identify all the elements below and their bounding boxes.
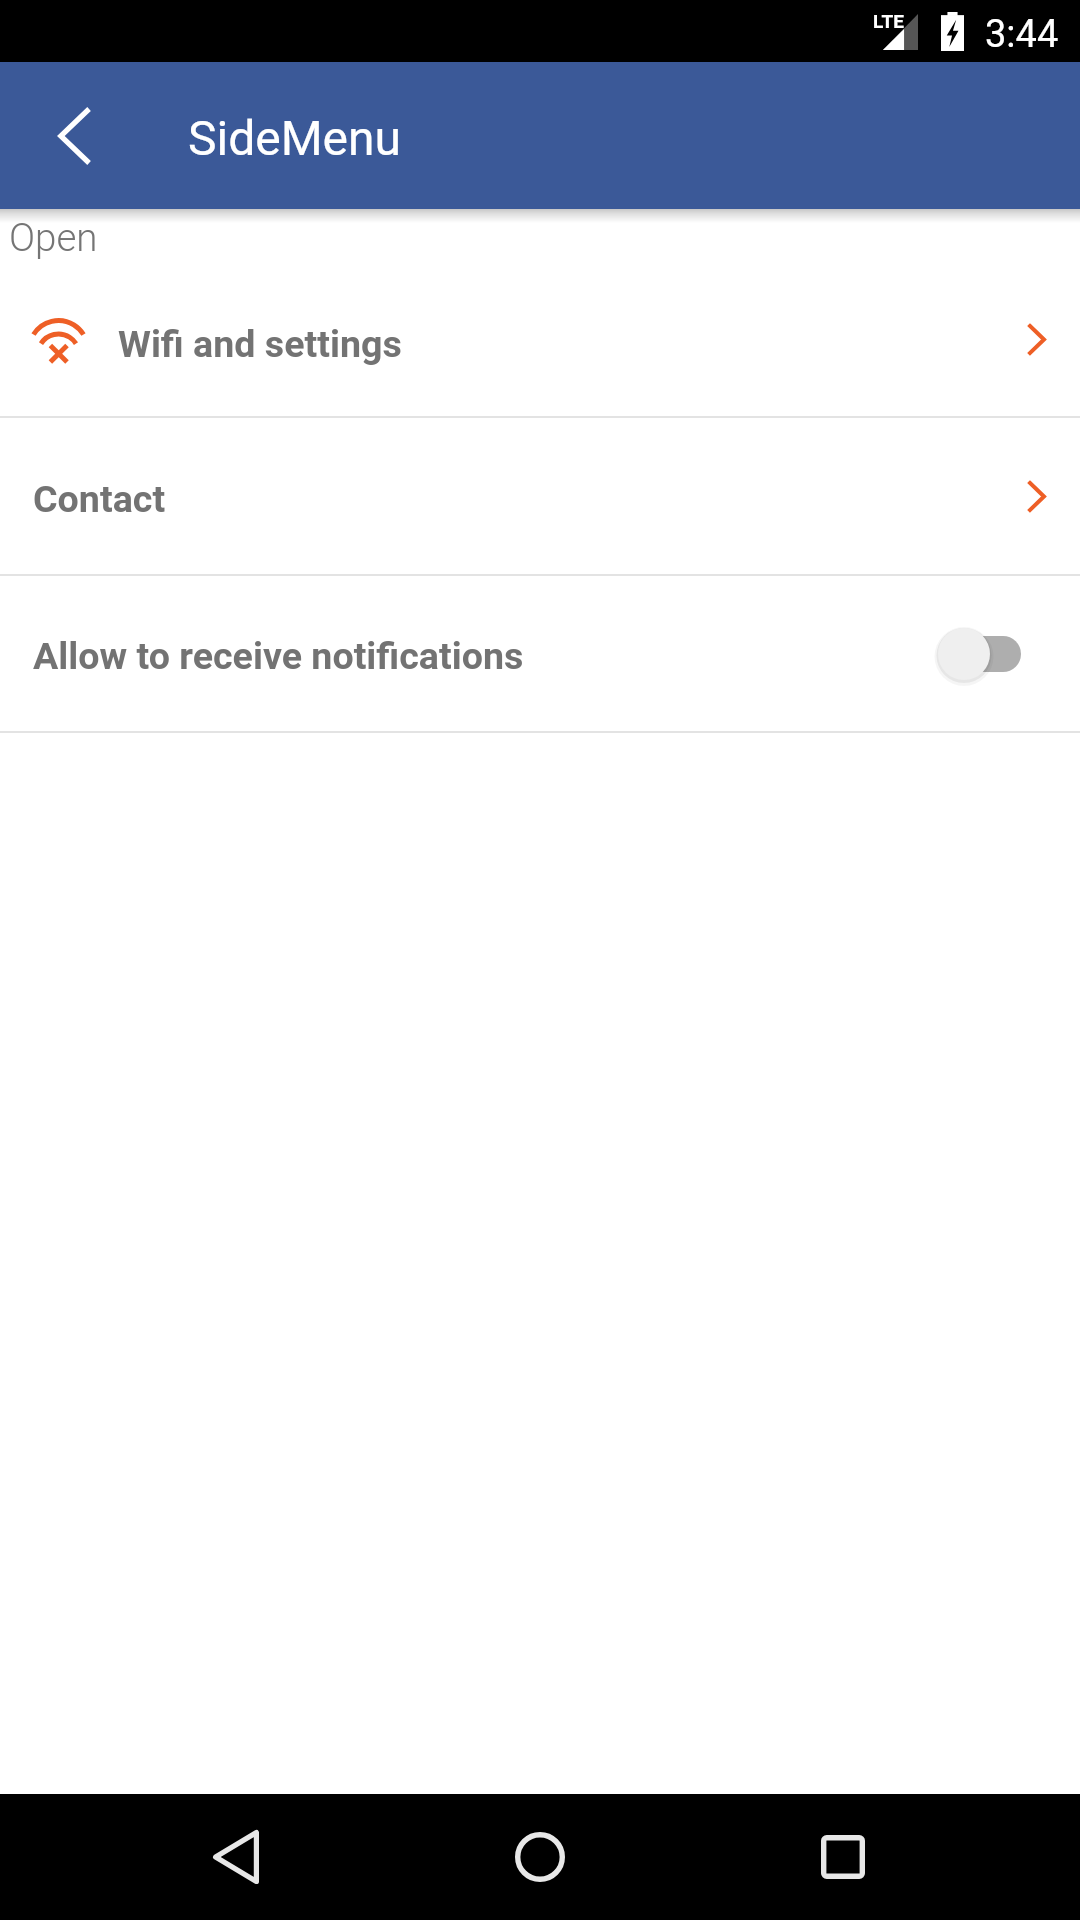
- staticText: Wifi and settings: [118, 322, 402, 366]
- staticText: Open: [9, 215, 98, 260]
- button[interactable]: Wifi and settings: [0, 270, 1080, 416]
- button[interactable]: Back: [20, 82, 128, 190]
- button[interactable]: Allow to receive notifications: [937, 618, 1033, 690]
- button[interactable]: Home: [470, 1794, 610, 1920]
- button[interactable]: Allow to receive notifications: [0, 576, 1080, 731]
- staticText: LTE: [873, 10, 904, 32]
- staticText: Allow to receive notifications: [33, 634, 524, 678]
- staticText: 3:44: [985, 12, 1059, 57]
- staticText: SideMenu: [188, 110, 402, 166]
- button[interactable]: Recents: [773, 1794, 913, 1920]
- staticText: Contact: [33, 477, 166, 521]
- button[interactable]: Contact: [0, 418, 1080, 574]
- button[interactable]: Back: [166, 1794, 306, 1920]
